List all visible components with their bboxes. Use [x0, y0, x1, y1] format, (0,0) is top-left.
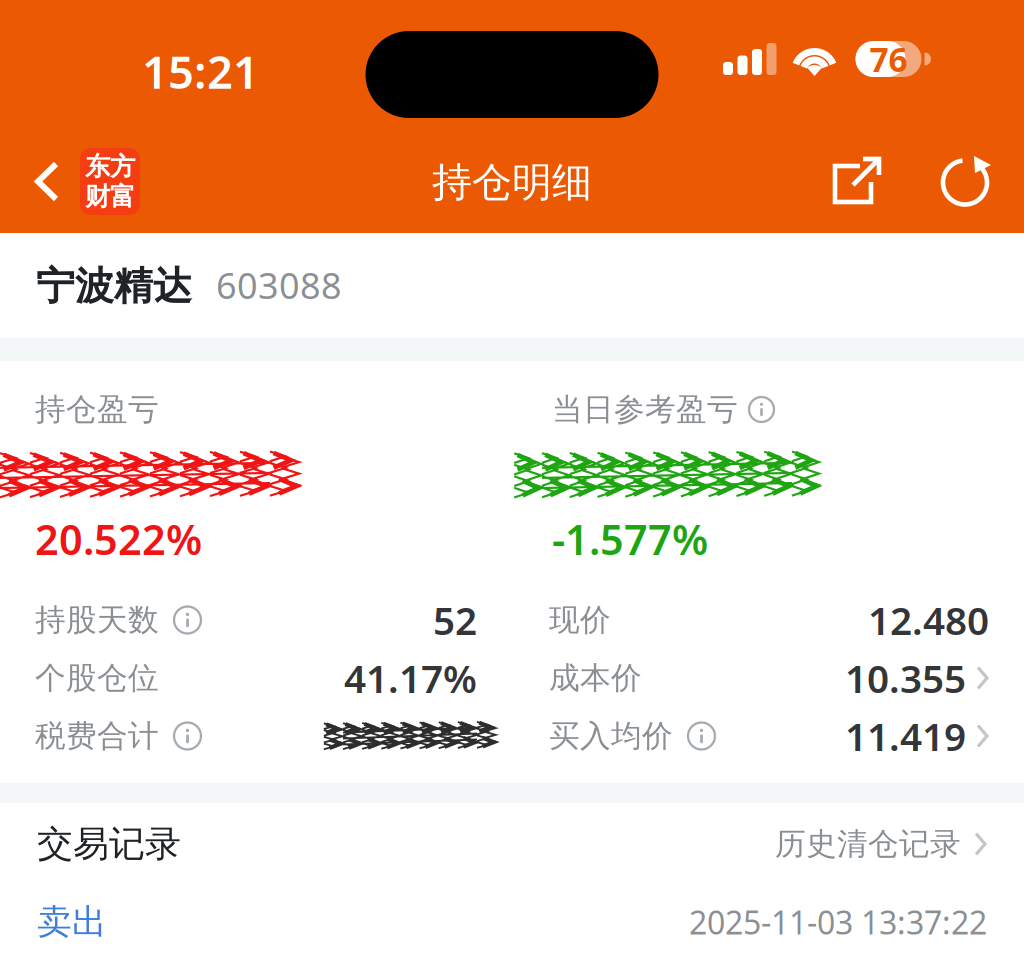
button[interactable]: 历史清仓记录 — [775, 825, 987, 863]
staticText: 方 — [110, 151, 135, 182]
staticText: 宁波精达 — [36, 262, 192, 310]
staticText: 财 — [85, 181, 110, 212]
staticText: 现价 — [549, 601, 611, 639]
staticText: 11.419 — [845, 710, 966, 762]
staticText: 41.17% — [344, 652, 477, 704]
staticText: 76 — [869, 37, 907, 81]
staticText: 东 — [85, 151, 110, 182]
staticText: -1.577% — [552, 512, 708, 566]
staticText: 持仓盈亏 — [35, 391, 159, 428]
staticText: 603088 — [216, 261, 342, 309]
staticText: 当日参考盈亏 — [552, 391, 738, 428]
staticText: 15:21 — [142, 41, 259, 101]
button[interactable]: 宁波精达 — [0, 233, 1024, 338]
staticText: 52 — [433, 594, 477, 646]
staticText: 富 — [110, 181, 135, 212]
button[interactable]: 刷新 — [933, 136, 1001, 214]
staticText: 税费合计 — [35, 717, 159, 755]
staticText: 成本价 — [549, 659, 642, 697]
staticText: 12.480 — [868, 594, 989, 646]
staticText: 历史清仓记录 — [775, 825, 961, 863]
staticText: 10.355 — [845, 652, 966, 704]
staticText: 持仓明细 — [432, 158, 592, 207]
button[interactable]: 分享 — [814, 137, 891, 214]
staticText: 个股仓位 — [35, 659, 159, 697]
staticText: 20.522% — [35, 512, 202, 566]
button[interactable]: 卖出 — [0, 885, 1024, 959]
staticText: 卖出 — [37, 901, 107, 943]
staticText: 持股天数 — [35, 601, 159, 639]
staticText: 2025-11-03 13:37:22 — [689, 901, 987, 943]
staticText: 交易记录 — [37, 822, 181, 866]
staticText: 买入均价 — [549, 717, 673, 755]
button[interactable]: 返回 — [0, 128, 156, 223]
